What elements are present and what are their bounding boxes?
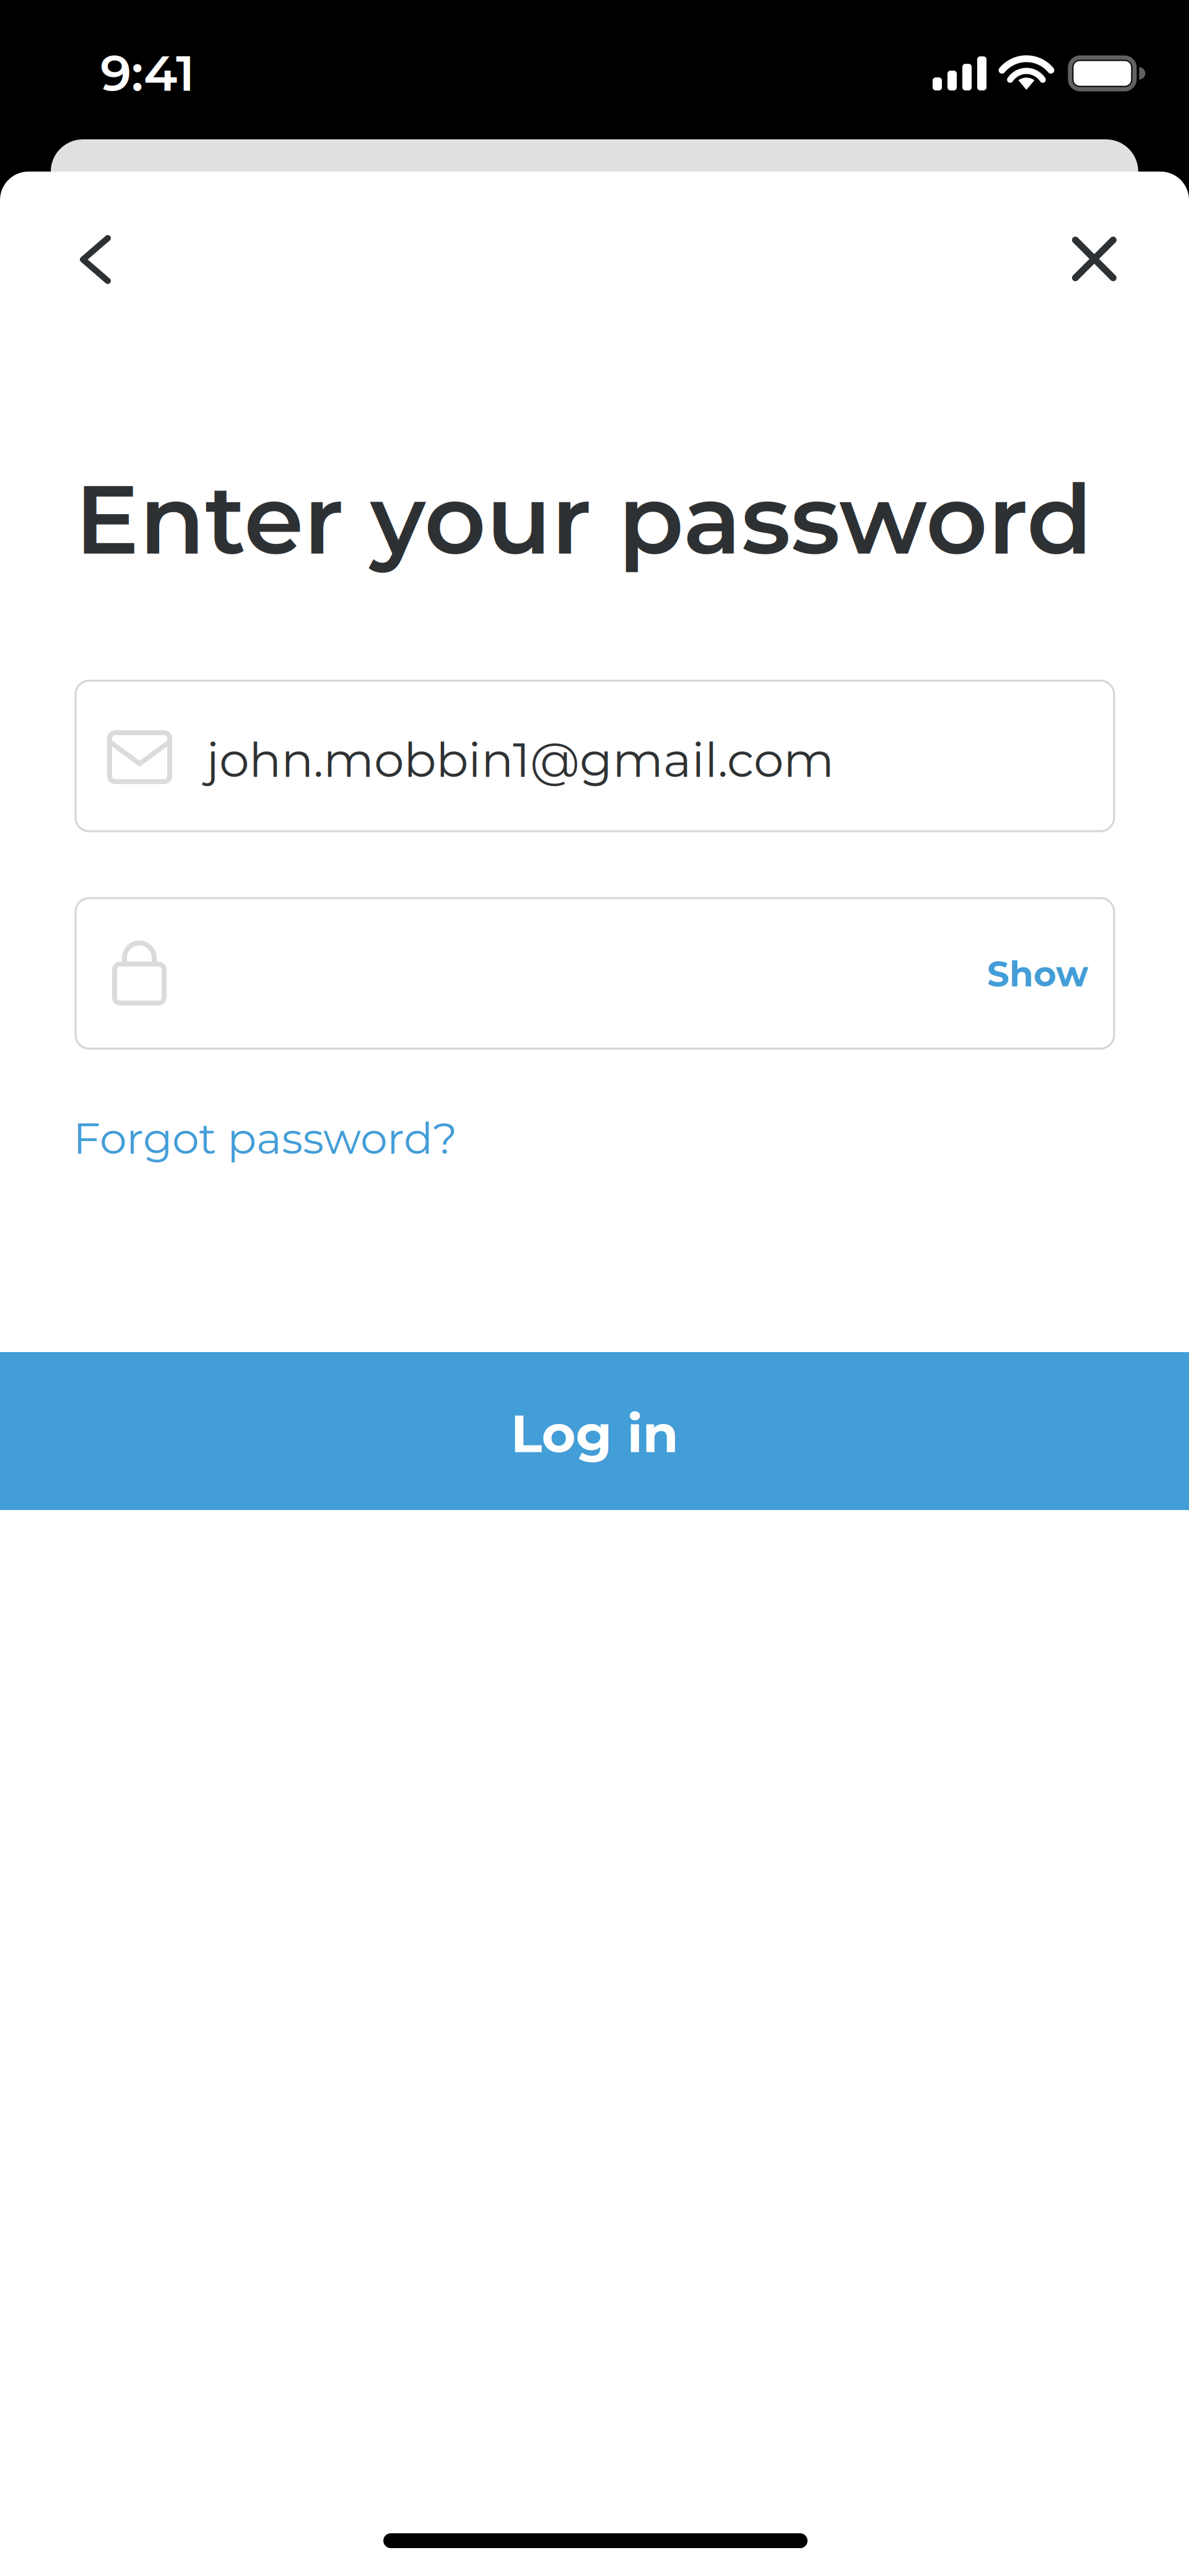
- button[interactable]: Back: [45, 213, 146, 306]
- button[interactable]: john.mobbin1@gmail.com: [76, 681, 1114, 831]
- staticText: Show: [987, 953, 1088, 995]
- staticText: Log in: [511, 1402, 678, 1465]
- staticText: 9:41: [100, 43, 194, 87]
- button[interactable]: Forgot password?: [73, 1111, 507, 1166]
- staticText: Enter your password: [75, 461, 1092, 560]
- staticText: Forgot password?: [73, 1112, 457, 1165]
- button[interactable]: Close: [1042, 211, 1146, 307]
- button[interactable]: Log in: [0, 1352, 1189, 1510]
- button[interactable]: Password: [76, 898, 1114, 1049]
- staticText: john.mobbin1@gmail.com: [206, 730, 834, 789]
- button[interactable]: Show: [941, 952, 1114, 995]
